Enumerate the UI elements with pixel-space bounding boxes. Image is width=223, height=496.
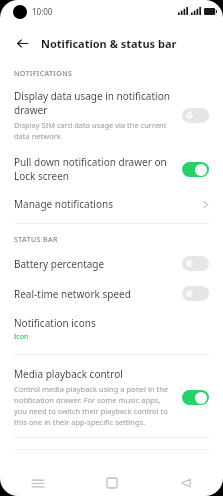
button[interactable]: Manage notifications [14,197,209,211]
button[interactable]: Pull down notification drawer on Lock sc… [14,155,209,183]
button[interactable]: Back [11,32,33,54]
button[interactable]: Toggle off [182,256,209,271]
staticText: Display SIM card data usage via the curr… [14,120,172,141]
staticText: Notification & status bar [41,36,177,51]
staticText: Pull down notification drawer on Lock sc… [14,155,172,183]
button[interactable]: Display data usage in notification drawe… [14,89,209,141]
button[interactable]: Toggle off [182,108,209,123]
staticText: Battery percentage [14,257,105,271]
button[interactable]: Battery percentage [14,256,209,271]
staticText: STATUS BAR [14,235,58,245]
staticText: Control media playback using a panel in … [14,384,172,427]
button[interactable]: Media playback control [14,367,209,427]
staticText: 10:00 [32,6,53,17]
button[interactable]: Toggle on [182,390,209,405]
button[interactable]: Toggle off [182,286,209,301]
button[interactable]: Recent apps [0,470,75,496]
staticText: Icon [14,332,29,342]
staticText: Notification icons [14,316,96,330]
button[interactable]: Home [75,470,149,496]
button[interactable]: Real-time network speed [14,286,209,301]
staticText: Display data usage in notification drawe… [14,89,172,117]
button[interactable]: Back [149,470,223,496]
button[interactable]: Notification icons [14,316,209,342]
staticText: Manage notifications [14,197,203,211]
staticText: Real-time network speed [14,287,131,301]
staticText: Media playback control [14,367,123,381]
staticText: NOTIFICATIONS [14,69,73,79]
button[interactable]: Toggle on [182,162,209,177]
